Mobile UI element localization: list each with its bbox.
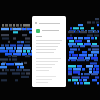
button[interactable] bbox=[35, 21, 63, 25]
button[interactable] bbox=[36, 28, 62, 33]
